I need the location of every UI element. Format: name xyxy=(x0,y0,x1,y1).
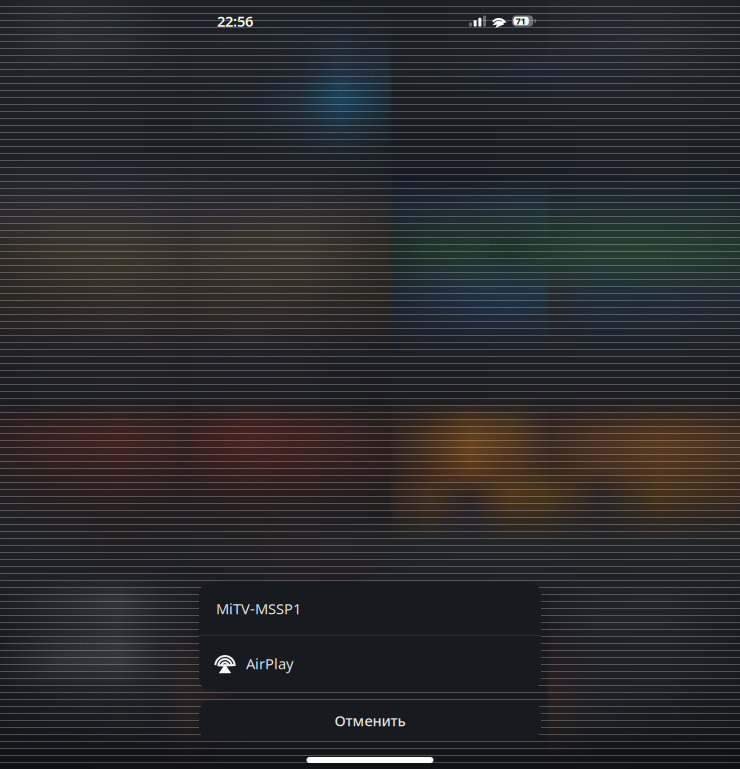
button[interactable]: AirPlay xyxy=(199,636,541,691)
staticText: Отменить xyxy=(334,711,405,730)
staticText: MiTV-MSSP1 xyxy=(216,599,301,618)
staticText: AirPlay xyxy=(246,654,293,673)
button[interactable]: Отменить xyxy=(199,700,541,741)
button[interactable]: MiTV-MSSP1 xyxy=(199,582,541,635)
staticText: 71 xyxy=(515,15,525,27)
staticText: 22:56 xyxy=(217,11,253,31)
